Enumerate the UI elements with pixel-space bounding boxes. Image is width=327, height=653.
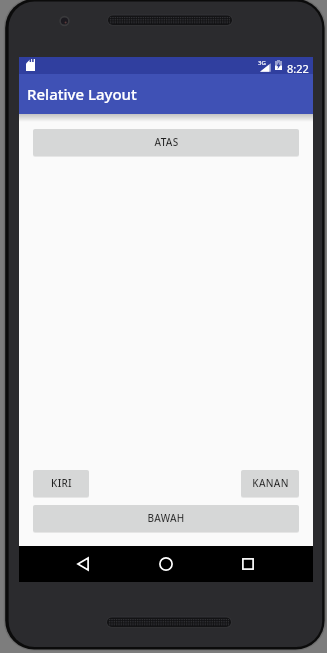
staticText: KIRI bbox=[51, 476, 72, 490]
button[interactable]: Home bbox=[144, 546, 188, 582]
staticText: KANAN bbox=[252, 476, 289, 490]
staticText: 8:22 bbox=[287, 61, 309, 76]
staticText: Relative Layout bbox=[27, 84, 137, 104]
button[interactable]: BAWAH bbox=[33, 505, 299, 532]
staticText: 3G bbox=[258, 59, 266, 67]
button[interactable]: Back bbox=[61, 546, 105, 582]
button[interactable]: Recent apps bbox=[226, 546, 270, 582]
button[interactable]: KANAN bbox=[241, 470, 299, 497]
staticText: ATAS bbox=[154, 135, 179, 149]
button[interactable]: KIRI bbox=[33, 470, 89, 497]
staticText: BAWAH bbox=[147, 511, 185, 525]
button[interactable]: ATAS bbox=[33, 129, 299, 156]
